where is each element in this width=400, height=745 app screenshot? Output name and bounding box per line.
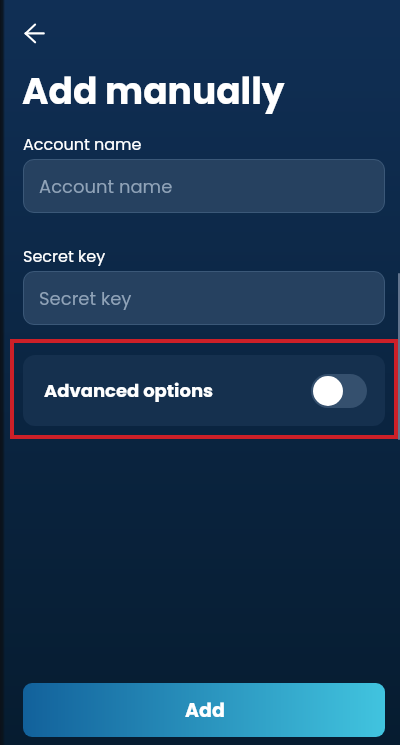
staticText: Add	[185, 697, 225, 724]
button[interactable]: Account name	[23, 159, 385, 213]
button[interactable]: Advanced options toggle	[311, 374, 367, 408]
staticText: Secret key	[23, 245, 106, 267]
staticText: Advanced options	[44, 378, 214, 403]
staticText: Add manually	[22, 66, 285, 116]
staticText: Account name	[23, 133, 142, 155]
button[interactable]: Add	[23, 683, 385, 737]
button[interactable]: Secret key	[23, 271, 385, 325]
staticText: Secret key	[39, 286, 132, 311]
staticText: Account name	[39, 174, 173, 199]
button[interactable]: Advanced options	[23, 355, 385, 426]
button[interactable]: Back	[10, 9, 58, 57]
